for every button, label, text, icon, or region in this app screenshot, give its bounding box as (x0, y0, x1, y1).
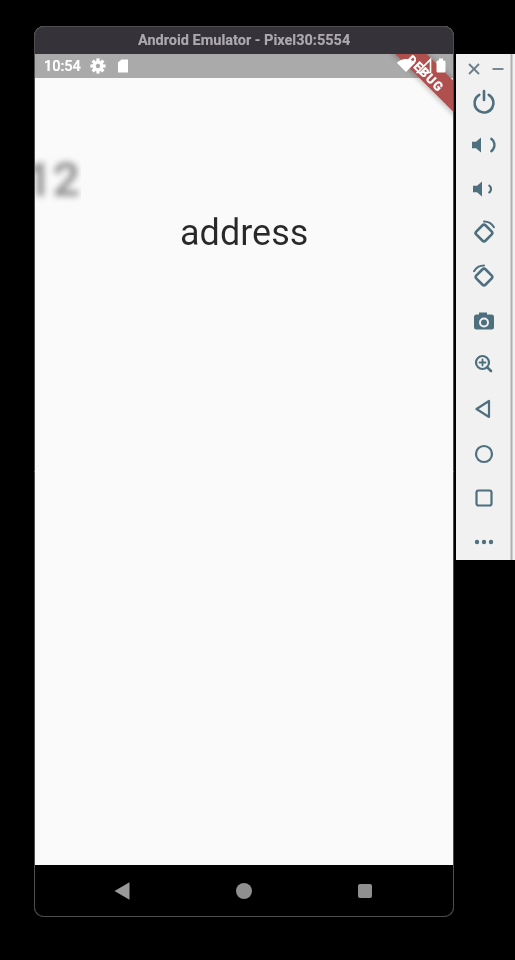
button[interactable] (466, 524, 502, 560)
button[interactable] (349, 875, 381, 907)
button[interactable] (466, 436, 502, 472)
button[interactable] (466, 480, 502, 516)
button[interactable] (466, 215, 502, 251)
button[interactable] (466, 346, 502, 382)
staticText: 12 (34, 151, 81, 207)
button[interactable] (106, 875, 138, 907)
staticText: address (180, 212, 309, 254)
button[interactable] (464, 59, 484, 79)
staticText: 10:54 (44, 58, 81, 75)
button[interactable] (466, 127, 502, 163)
button[interactable] (228, 875, 260, 907)
button[interactable] (466, 303, 502, 339)
staticText: Android Emulator - Pixel30:5554 (138, 32, 351, 49)
staticText: DEBUG (404, 54, 447, 95)
button[interactable] (466, 171, 502, 207)
button[interactable] (466, 259, 502, 295)
button[interactable] (488, 59, 508, 79)
button[interactable] (466, 391, 502, 427)
button[interactable] (466, 84, 502, 120)
